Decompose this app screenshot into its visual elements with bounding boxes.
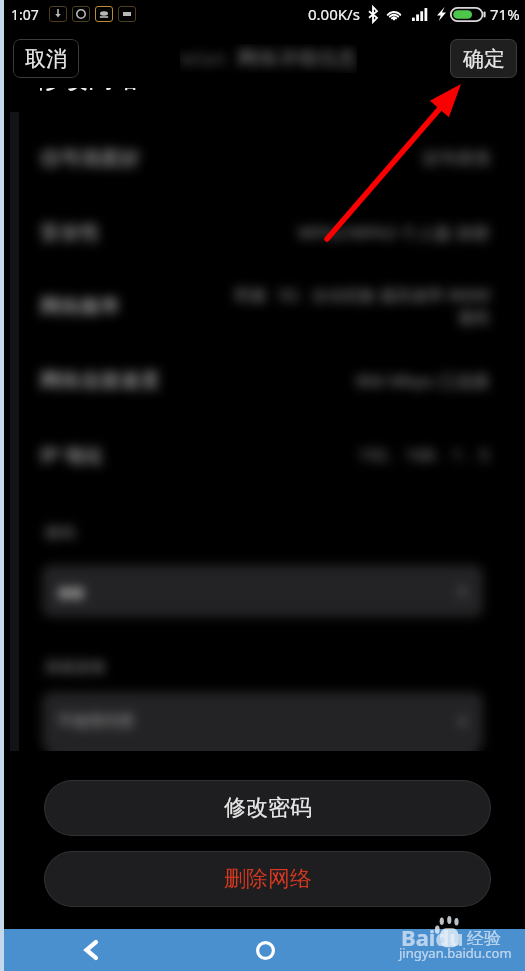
- staticText: 取消: [25, 46, 67, 72]
- staticText: 修改密码: [224, 794, 312, 822]
- staticText: Baidu: [401, 922, 464, 952]
- button[interactable]: Back: [68, 929, 114, 971]
- button[interactable]: 取消: [13, 39, 79, 78]
- staticText: 71%: [490, 4, 520, 24]
- staticText: 信号强度好: [40, 146, 140, 171]
- staticText: 192 . 168 . 1 . 5: [358, 443, 490, 466]
- staticText: 修改网络: [36, 88, 140, 95]
- staticText: 高级选项: [45, 658, 105, 677]
- staticText: 0.00K/s: [308, 4, 360, 24]
- staticText: WPA2/WPA3 个人版 加密: [298, 221, 490, 244]
- button[interactable]: Home: [242, 929, 288, 971]
- staticText: ●●: [58, 583, 85, 600]
- staticText: jingyan.baidu.com: [399, 944, 512, 962]
- staticText: 网络频率: [40, 294, 120, 319]
- button[interactable]: 修改密码: [44, 780, 491, 836]
- staticText: 密码: [45, 524, 75, 543]
- staticText: wlan: [180, 44, 227, 73]
- button[interactable]: 删除网络: [44, 851, 491, 907]
- staticText: 网络详细信息: [237, 46, 357, 71]
- staticText: 安全性: [40, 220, 100, 245]
- staticText: 双频 5G 自动切换 最高速率 866M 最高: [233, 284, 490, 328]
- button[interactable]: 不使用代理: [42, 692, 483, 751]
- button[interactable]: ●●: [42, 565, 483, 617]
- staticText: 1:07: [11, 5, 39, 24]
- staticText: 信号很强: [422, 148, 490, 169]
- staticText: 866 Mbps 已连接: [356, 369, 490, 392]
- staticText: 网络连接速度: [40, 368, 160, 393]
- staticText: 确定: [463, 46, 505, 72]
- staticText: 删除网络: [224, 865, 312, 893]
- staticText: IP 地址: [40, 441, 105, 468]
- staticText: 不使用代理: [58, 712, 133, 731]
- button[interactable]: 确定: [450, 39, 517, 78]
- staticText: 经验: [467, 928, 501, 949]
